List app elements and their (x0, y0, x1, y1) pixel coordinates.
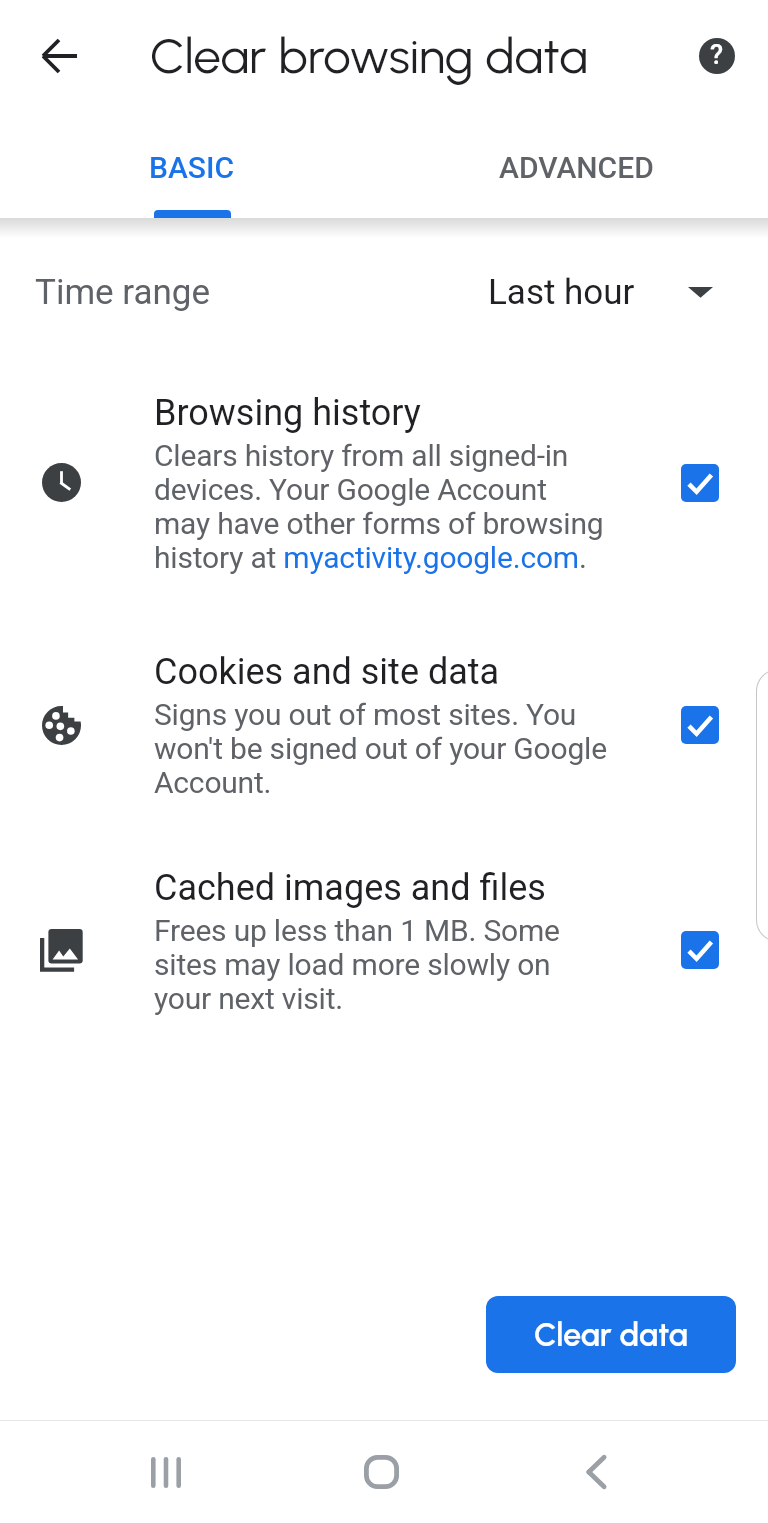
staticText: Browsing history (154, 387, 421, 435)
button[interactable]: Browsing history checkbox (666, 449, 734, 517)
staticText: ADVANCED (499, 150, 654, 185)
button[interactable]: Time range (0, 258, 768, 326)
button[interactable]: BASIC (0, 112, 384, 218)
button[interactable]: Cookies and site data checkbox (666, 691, 734, 759)
staticText: Clear browsing data (150, 26, 588, 85)
staticText: BASIC (149, 150, 235, 185)
button[interactable]: Help (681, 20, 753, 92)
staticText: Time range (35, 272, 211, 313)
button[interactable] (27, 448, 95, 516)
button[interactable]: Navigate up (20, 16, 100, 96)
button[interactable]: Clear data (486, 1296, 736, 1373)
staticText: Clears history from all signed-in device… (154, 439, 607, 575)
staticText: ? (710, 39, 724, 71)
button[interactable]: ADVANCED (384, 112, 768, 218)
button[interactable]: Back (560, 1421, 632, 1523)
button[interactable]: Recent apps (130, 1421, 202, 1523)
button[interactable]: Home (345, 1421, 417, 1523)
staticText: Cached images and files (154, 862, 546, 910)
staticText: Last hour (488, 272, 635, 313)
button[interactable]: Cached images and files checkbox (666, 916, 734, 984)
button[interactable] (27, 916, 95, 984)
button[interactable] (27, 691, 95, 759)
staticText: Clear data (534, 1316, 688, 1354)
staticText: Frees up less than 1 MB. Some sites may … (154, 914, 607, 1016)
staticText: Signs you out of most sites. You won't b… (154, 698, 607, 800)
staticText: Cookies and site data (154, 646, 500, 694)
